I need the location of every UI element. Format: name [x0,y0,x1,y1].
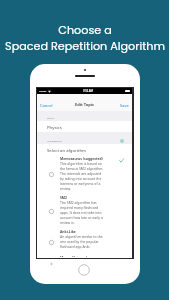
staticText: Edit Topic [75,102,95,107]
staticText: Memosaurus (suggested) [60,156,103,161]
button[interactable]: Cancel [40,103,53,108]
staticText: Physics [47,124,62,130]
staticText: Select an algorithm [47,147,87,153]
staticText: Save [120,103,129,108]
staticText: 7:52 AM [83,89,93,93]
staticText: Cancel [40,103,53,108]
staticText: Spaced Repetition Algorithm [5,38,165,54]
button[interactable]: Memosaurus (suggested) [37,156,132,194]
staticText: ALGORITHM [47,139,62,142]
staticText: This algorithm is based on the famous SM… [60,161,105,191]
button[interactable]: Manual Intervals [37,256,132,258]
button[interactable]: Select an algorithm [37,144,132,156]
button[interactable]: SM2 [37,194,132,229]
staticText: Manual Intervals [60,255,89,257]
staticText: SM2 [60,195,68,200]
button[interactable]: Anki-Like [37,229,132,256]
staticText: An algorithm similar to the one used by … [60,234,105,249]
staticText: Choose a [58,22,112,38]
staticText: Anki-Like [60,229,76,234]
button[interactable]: Algorithm help [120,139,124,143]
staticText: TOPIC [47,116,55,119]
staticText: The SM2 algorithm has inspired many flas… [60,200,105,225]
button[interactable]: Save [120,103,129,108]
button[interactable]: Physics [37,121,132,132]
staticText: Carrier [39,90,47,93]
